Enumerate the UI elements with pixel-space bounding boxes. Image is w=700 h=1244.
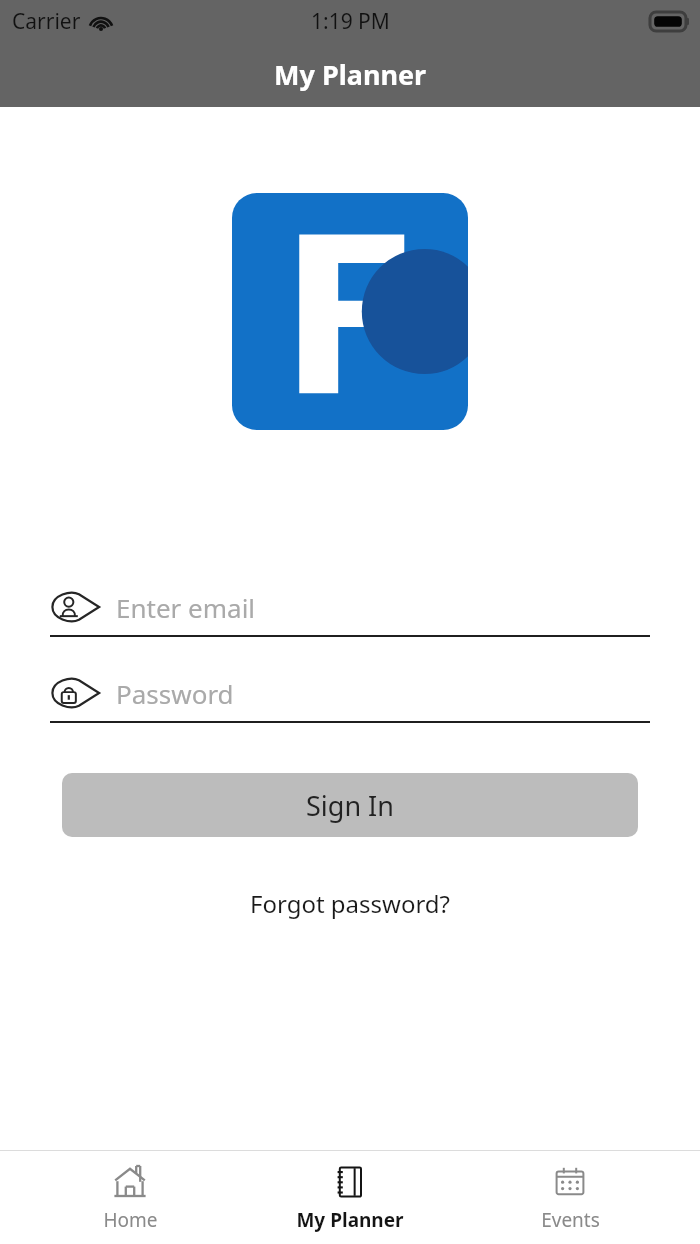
staticText: Carrier <box>12 7 81 36</box>
other: Email field <box>50 587 98 627</box>
button[interactable]: Password field <box>50 673 650 723</box>
button[interactable]: Sign In <box>62 773 638 837</box>
button[interactable]: Email field <box>50 587 650 637</box>
staticText: Sign In <box>306 787 394 824</box>
staticText: Password <box>116 676 234 711</box>
staticText: Events <box>541 1207 600 1233</box>
staticText: My Planner <box>296 1207 404 1233</box>
other: Password field <box>50 673 98 713</box>
staticText: 1:19 PM <box>311 7 390 36</box>
button[interactable]: Home <box>40 1156 220 1239</box>
button[interactable]: Forgot password? <box>240 881 461 926</box>
staticText: Forgot password? <box>250 887 451 920</box>
staticText: My Planner <box>274 56 427 93</box>
button[interactable]: My Planner <box>260 1156 440 1239</box>
button[interactable]: Events <box>480 1156 660 1239</box>
staticText: Enter email <box>116 590 256 625</box>
staticText: Home <box>103 1207 158 1233</box>
